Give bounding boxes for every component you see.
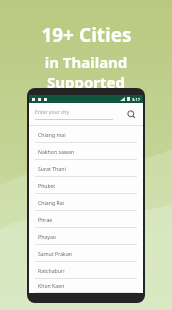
button[interactable]: Phuket (29, 177, 143, 194)
button[interactable]: Nakhon sawan (29, 143, 143, 160)
button[interactable]: Ratchaburi (29, 262, 143, 279)
staticText: Ratchaburi (38, 267, 65, 274)
staticText: Phrae (38, 216, 53, 223)
staticText: Enter your city (35, 109, 69, 116)
staticText: Samut Prakan (38, 250, 73, 257)
button[interactable]: Phrae (29, 211, 143, 228)
staticText: Surat Thani (38, 165, 66, 172)
button[interactable]: Samut Prakan (29, 245, 143, 262)
staticText: Nakhon sawan (38, 148, 75, 155)
staticText: in Thailand Supported (6, 52, 166, 92)
button[interactable]: Khon Kaen (29, 279, 143, 293)
staticText: Khon Kaen (38, 282, 65, 289)
staticText: Phuket (38, 182, 56, 189)
staticText: Chiang Rai (38, 199, 64, 206)
button[interactable]: Chiang Rai (29, 194, 143, 211)
staticText: Phayao (38, 233, 56, 240)
button[interactable]: Surat Thani (29, 160, 143, 177)
button[interactable]: Phayao (29, 228, 143, 245)
staticText: 19+ Cities (41, 22, 132, 48)
button[interactable]: Enter your city (29, 103, 143, 125)
button[interactable]: Search (125, 108, 137, 120)
staticText: Chiang mai (38, 131, 66, 138)
staticText: 3:17 (132, 97, 140, 102)
button[interactable]: Chiang mai (29, 126, 143, 143)
